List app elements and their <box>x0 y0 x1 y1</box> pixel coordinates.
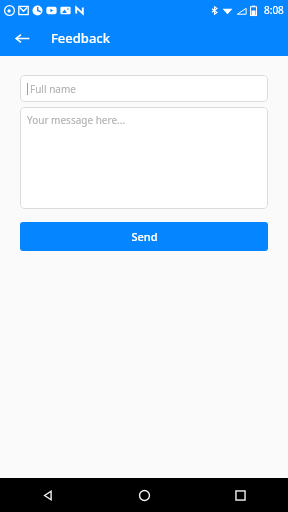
button[interactable]: Full name <box>20 75 268 102</box>
button[interactable]: Recent apps <box>192 478 288 512</box>
button[interactable]: Back <box>8 24 36 52</box>
staticText: Feedback <box>51 29 110 47</box>
button[interactable]: Send <box>20 222 268 251</box>
button[interactable]: Back <box>0 478 96 512</box>
staticText: 8:08 <box>264 3 284 17</box>
button[interactable]: Home <box>96 478 192 512</box>
staticText: Full name <box>30 82 76 96</box>
button[interactable]: Your message here... <box>20 107 268 209</box>
staticText: Your message here... <box>27 113 126 127</box>
staticText: Send <box>131 229 158 244</box>
